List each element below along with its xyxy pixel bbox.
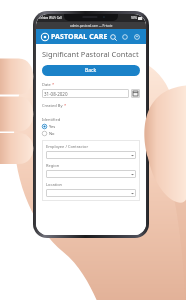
button[interactable]: No bbox=[42, 131, 55, 136]
button[interactable]: 31-08-2020 bbox=[42, 89, 129, 98]
button[interactable]: Notifications bbox=[121, 33, 129, 41]
button[interactable] bbox=[46, 170, 136, 178]
staticText: PASTORAL CARE bbox=[51, 32, 108, 42]
staticText: No bbox=[49, 131, 55, 136]
staticText: Location bbox=[46, 182, 63, 187]
staticText: 9:40 pm bbox=[90, 16, 102, 20]
button[interactable] bbox=[46, 151, 136, 159]
staticText: Back bbox=[85, 67, 97, 74]
button[interactable]: Yes bbox=[42, 124, 56, 129]
staticText: Significant Pastoral Contact bbox=[42, 49, 139, 59]
staticText: Created By bbox=[42, 103, 63, 108]
staticText: Yes bbox=[49, 124, 56, 129]
button[interactable]: Pick date bbox=[131, 89, 140, 98]
staticText: 93% bbox=[131, 16, 137, 20]
staticText: Date bbox=[42, 82, 51, 87]
staticText: 31-08-2020 bbox=[44, 91, 68, 97]
staticText: admin.pastoral.care — Private bbox=[70, 24, 113, 28]
staticText: Region bbox=[46, 163, 60, 168]
button[interactable]: Search bbox=[109, 33, 117, 41]
staticText: * bbox=[64, 103, 67, 108]
button[interactable]: PASTORAL CARE bbox=[41, 32, 108, 42]
button[interactable]: Back bbox=[42, 65, 140, 76]
staticText: Telstra Wi-Fi Call bbox=[39, 16, 62, 20]
staticText: * bbox=[52, 82, 55, 87]
button[interactable] bbox=[46, 189, 136, 197]
button[interactable]: Account bbox=[133, 33, 141, 41]
staticText: Employee / Contractor bbox=[46, 144, 89, 149]
staticText: Identified bbox=[42, 117, 61, 122]
